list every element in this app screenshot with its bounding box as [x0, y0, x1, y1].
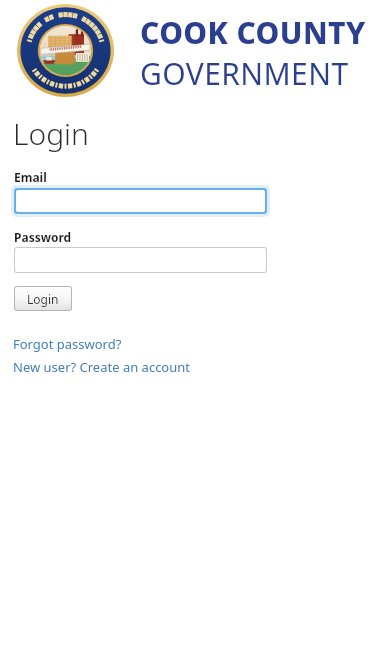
button[interactable]: Forgot password?: [13, 334, 123, 353]
staticText: GOVERNMENT: [140, 53, 349, 94]
staticText: Login: [27, 291, 59, 307]
staticText: Password: [14, 229, 72, 245]
button[interactable]: New user? Create an account: [13, 357, 191, 376]
staticText: New user? Create an account: [13, 358, 190, 376]
staticText: Email: [14, 169, 47, 185]
staticText: COOK COUNTY: [140, 12, 366, 53]
button[interactable]: Login: [15, 287, 71, 310]
staticText: Login: [13, 113, 89, 154]
staticText: Forgot password?: [13, 335, 122, 353]
